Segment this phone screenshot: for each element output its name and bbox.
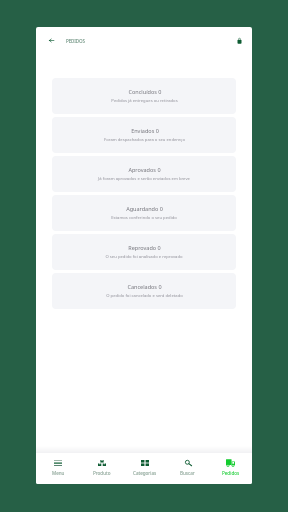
button[interactable]: Aguardando 0 xyxy=(52,195,236,231)
button[interactable]: Reprovado 0 xyxy=(52,234,236,270)
staticText: Foram despachados para o seu endereço xyxy=(104,137,185,143)
staticText: Pedidos já entregues ou retirados xyxy=(111,98,178,104)
staticText: Concluídos 0 xyxy=(128,88,162,95)
button[interactable]: Enviados 0 xyxy=(52,117,236,153)
staticText: Aprovados 0 xyxy=(128,166,161,173)
staticText: Menu xyxy=(52,470,65,476)
staticText: O pedido foi cancelado e será deletado xyxy=(106,293,183,299)
staticText: Buscar xyxy=(180,470,195,476)
button[interactable]: Back xyxy=(44,33,58,47)
button[interactable]: Aprovados 0 xyxy=(52,156,236,192)
staticText: Pedidos xyxy=(222,470,240,476)
button[interactable]: Categorias xyxy=(123,453,166,484)
button[interactable]: Menu xyxy=(36,453,80,484)
button[interactable]: Cancelados 0 xyxy=(52,273,236,309)
staticText: Já foram aprovados e serão enviados em b… xyxy=(98,176,190,182)
staticText: O seu pedido foi analisado e reprovado xyxy=(105,254,183,260)
staticText: Estamos conferindo o seu pedido xyxy=(111,215,177,221)
button[interactable]: Shopping bag xyxy=(233,34,246,47)
button[interactable]: Concluídos 0 xyxy=(52,78,236,114)
staticText: Reprovado 0 xyxy=(128,244,161,251)
staticText: Aguardando 0 xyxy=(126,205,163,212)
staticText: Cancelados 0 xyxy=(127,283,162,290)
staticText: Categorias xyxy=(133,470,157,476)
button[interactable]: Produto xyxy=(80,453,123,484)
staticText: PEDIDOS xyxy=(66,38,85,44)
staticText: Produto xyxy=(93,470,111,476)
button[interactable]: Pedidos xyxy=(209,453,252,484)
staticText: Enviados 0 xyxy=(131,127,159,134)
button[interactable]: Buscar xyxy=(166,453,209,484)
